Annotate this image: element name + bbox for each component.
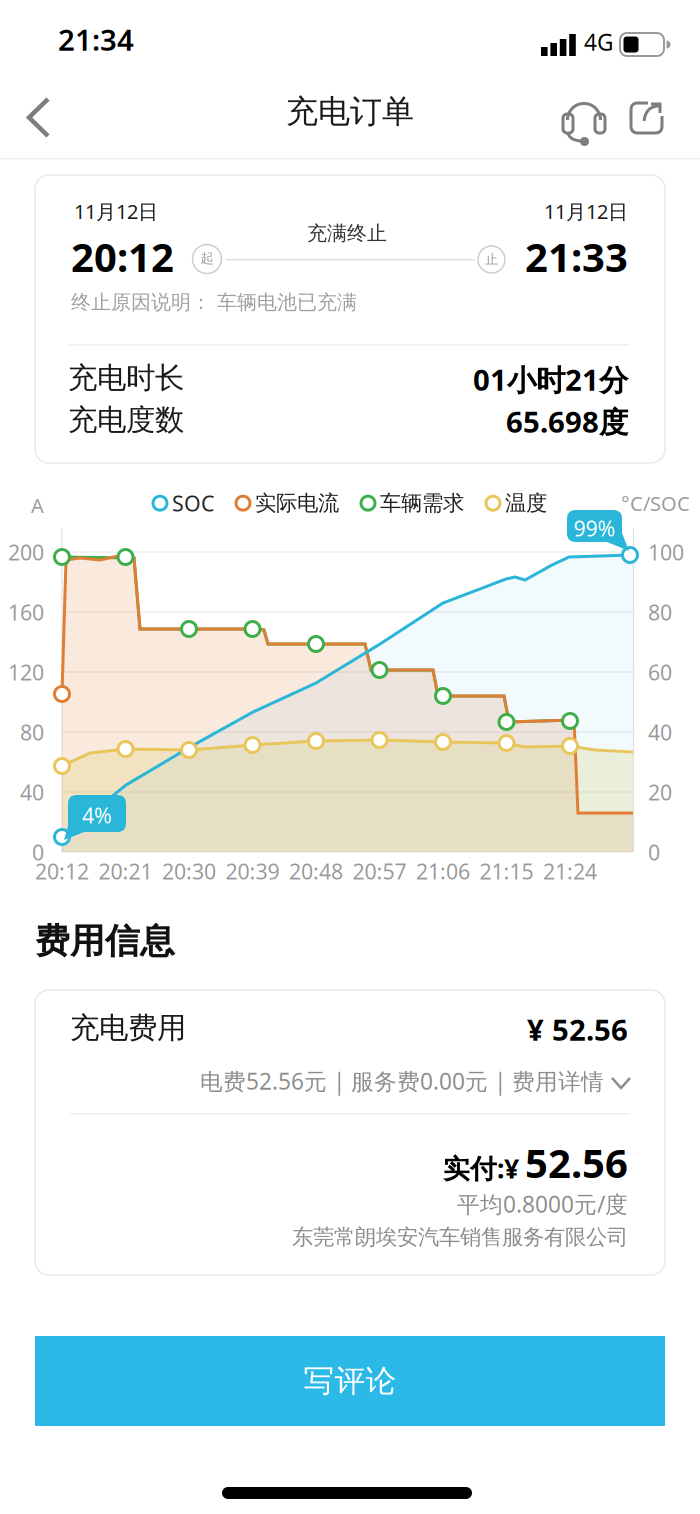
staticText: 20:39: [225, 857, 279, 885]
staticText: 11月12日: [74, 198, 158, 225]
staticText: 充电度数: [68, 402, 184, 438]
staticText: 21:15: [479, 857, 533, 885]
staticText: 80: [20, 718, 44, 746]
staticText: 99%: [573, 514, 615, 542]
staticText: °C/SOC: [621, 490, 690, 517]
button[interactable]: [627, 99, 667, 139]
staticText: 52.56: [525, 1136, 628, 1189]
staticText: 车辆需求: [380, 490, 464, 516]
staticText: 20:12: [35, 857, 89, 885]
staticText: 100: [648, 538, 684, 566]
staticText: 21:24: [543, 857, 597, 885]
staticText: 0: [648, 838, 660, 866]
staticText: 20:21: [98, 857, 152, 885]
staticText: 实际电流: [255, 490, 339, 516]
staticText: 实付:¥: [443, 1150, 519, 1186]
staticText: 充电时长: [68, 360, 184, 396]
staticText: 21:06: [416, 857, 470, 885]
staticText: 80: [648, 598, 672, 626]
staticText: 20:12: [71, 230, 174, 283]
staticText: 21:33: [525, 230, 628, 283]
staticText: 20:30: [162, 857, 216, 885]
staticText: 4G: [584, 27, 614, 57]
staticText: 止: [485, 251, 498, 267]
staticText: 4%: [82, 801, 112, 829]
button[interactable]: 电费52.56元 | 服务费0.00元 | 费用详情: [200, 1060, 636, 1100]
staticText: 费用信息: [35, 920, 175, 963]
staticText: 平均0.8000元/度: [457, 1189, 628, 1219]
staticText: 0: [32, 838, 44, 866]
staticText: 充电费用: [70, 1010, 186, 1046]
staticText: 120: [8, 658, 44, 686]
staticText: 21:34: [58, 20, 134, 59]
staticText: 01小时21分: [473, 360, 628, 399]
staticText: 11月12日: [544, 198, 628, 225]
staticText: 终止原因说明： 车辆电池已充满: [71, 290, 357, 315]
staticText: 200: [8, 538, 44, 566]
staticText: 160: [8, 598, 44, 626]
staticText: 20: [648, 778, 672, 806]
staticText: 20:57: [352, 857, 406, 885]
staticText: A: [31, 492, 44, 519]
staticText: 起: [200, 250, 213, 266]
staticText: SOC: [172, 489, 214, 517]
staticText: 40: [648, 718, 672, 746]
staticText: 温度: [505, 490, 547, 516]
staticText: 60: [648, 658, 672, 686]
staticText: 20:48: [289, 857, 343, 885]
button[interactable]: 写评论: [35, 1336, 665, 1426]
button[interactable]: [18, 88, 78, 148]
staticText: 电费52.56元 | 服务费0.00元 | 费用详情: [200, 1066, 604, 1096]
staticText: 充满终止: [307, 221, 387, 246]
staticText: 40: [20, 778, 44, 806]
staticText: 充电订单: [286, 92, 414, 131]
staticText: ¥ 52.56: [527, 1010, 628, 1049]
staticText: 东莞常朗埃安汽车销售服务有限公司: [292, 1224, 628, 1250]
button[interactable]: [558, 96, 610, 148]
staticText: 写评论: [303, 1362, 396, 1400]
staticText: 65.698度: [506, 402, 628, 441]
